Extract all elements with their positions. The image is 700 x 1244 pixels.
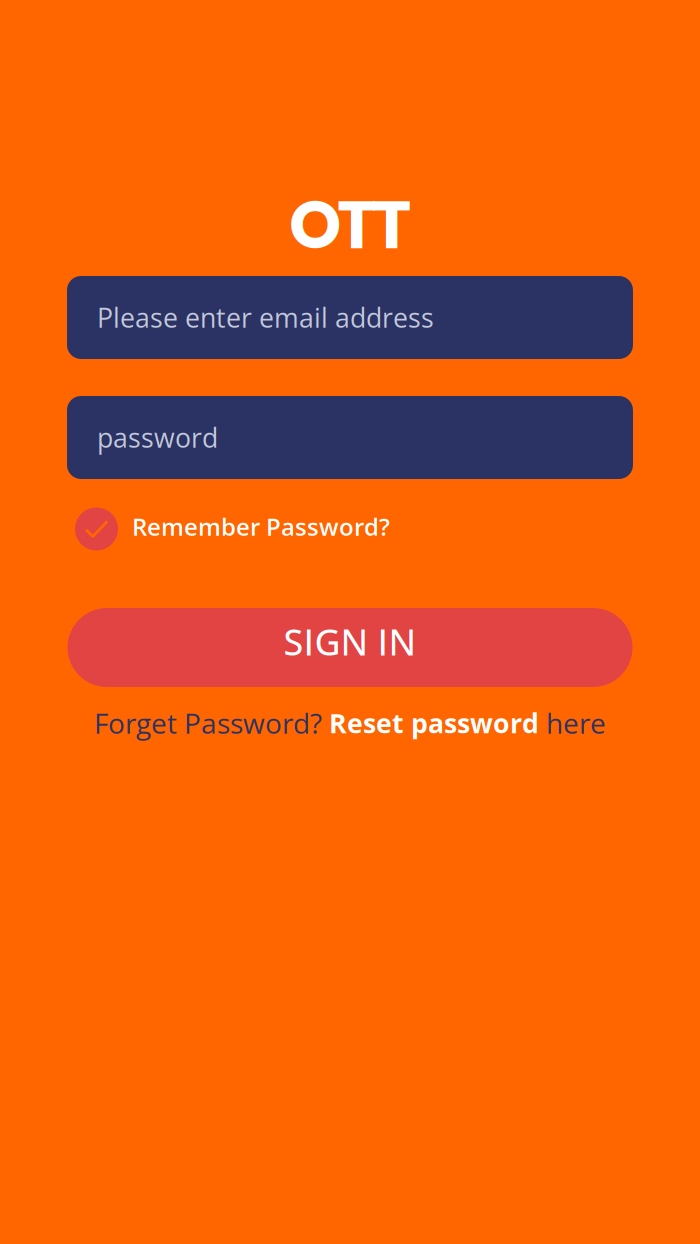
staticText: Reset password bbox=[329, 705, 539, 741]
button[interactable]: SIGN IN bbox=[67, 608, 632, 687]
staticText: here bbox=[539, 704, 606, 742]
button[interactable]: password bbox=[67, 396, 633, 479]
button[interactable]: Please enter email address bbox=[67, 276, 633, 359]
staticText: Please enter email address bbox=[97, 299, 434, 336]
staticText: Forget Password? bbox=[94, 704, 329, 742]
staticText: password bbox=[97, 419, 218, 456]
button[interactable]: Remember Password? bbox=[67, 503, 633, 555]
staticText: SIGN IN bbox=[283, 617, 416, 666]
button[interactable]: Forget Password? bbox=[94, 704, 606, 742]
staticText: OTT bbox=[289, 178, 411, 272]
staticText: Remember Password? bbox=[132, 510, 390, 543]
